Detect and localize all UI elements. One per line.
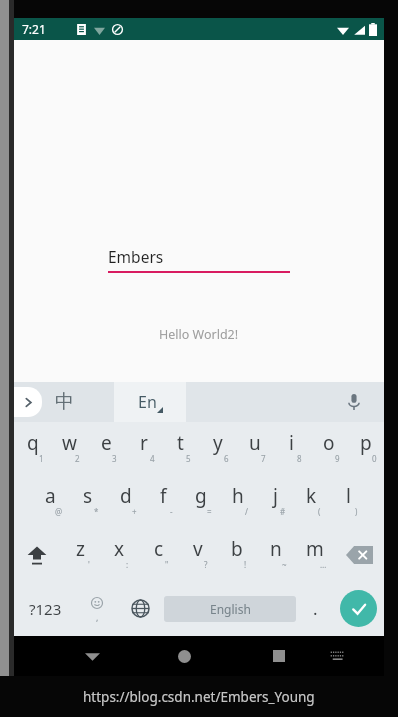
button[interactable]: i (273, 422, 310, 475)
staticText: a (45, 483, 56, 509)
staticText: 6 (224, 453, 229, 464)
button[interactable]: Emoji (76, 581, 118, 636)
staticText: v (193, 536, 203, 562)
button[interactable]: Switch keyboard (314, 636, 361, 676)
button[interactable]: Back (69, 636, 115, 676)
button[interactable]: p (347, 422, 384, 475)
staticText: x (114, 536, 125, 562)
button[interactable]: f (145, 475, 182, 528)
button[interactable]: e (88, 422, 125, 475)
staticText: o (323, 430, 335, 456)
staticText: c (154, 536, 164, 562)
staticText: Hello World2! (159, 326, 239, 343)
staticText: n (270, 536, 282, 562)
staticText: h (232, 483, 244, 509)
staticText: 7:21 (22, 21, 46, 37)
staticText: . (313, 597, 318, 620)
staticText: m (306, 536, 324, 562)
button[interactable]: s (69, 475, 107, 528)
button[interactable]: g (182, 475, 219, 528)
staticText: w (62, 430, 77, 456)
button[interactable]: m (295, 528, 334, 581)
button[interactable]: d (107, 475, 145, 528)
staticText: y (213, 430, 223, 456)
staticText: 5 (186, 453, 191, 464)
staticText: r (140, 430, 148, 456)
staticText: j (273, 483, 278, 509)
button[interactable]: English (164, 596, 296, 622)
staticText: ) (355, 506, 358, 517)
button[interactable]: Home (161, 636, 208, 676)
button[interactable]: Chinese input (14, 382, 114, 422)
staticText: 9 (335, 453, 340, 464)
staticText: u (249, 430, 261, 456)
button[interactable]: j (256, 475, 293, 528)
staticText: … (320, 559, 327, 570)
button[interactable]: ?123 (14, 581, 76, 636)
staticText: # (280, 506, 286, 517)
staticText: = (207, 506, 212, 517)
staticText: 中 (55, 390, 74, 414)
staticText: q (27, 430, 39, 456)
staticText: ?123 (29, 599, 62, 619)
staticText: z (76, 536, 85, 562)
button[interactable]: o (310, 422, 347, 475)
button[interactable]: Recents (255, 636, 302, 676)
staticText: 7 (261, 453, 266, 464)
staticText: g (195, 483, 207, 509)
staticText: 2 (75, 453, 80, 464)
staticText: @ (55, 506, 63, 517)
staticText: d (120, 483, 132, 509)
staticText: En (138, 391, 157, 413)
staticText: l (346, 483, 351, 509)
staticText: 4 (150, 453, 155, 464)
staticText: ? (204, 559, 208, 570)
staticText: ~ (282, 559, 287, 570)
button[interactable]: y (199, 422, 236, 475)
staticText: f (160, 483, 167, 509)
staticText: i (289, 430, 294, 456)
button[interactable]: En (114, 382, 186, 422)
button[interactable]: u (236, 422, 273, 475)
staticText: English (210, 601, 251, 617)
button[interactable]: c (139, 528, 178, 581)
staticText: * (94, 506, 99, 517)
button[interactable]: z (60, 528, 100, 581)
button[interactable]: Shift (14, 528, 60, 581)
button[interactable]: b (217, 528, 256, 581)
button[interactable]: n (256, 528, 295, 581)
staticText: ! (244, 559, 247, 570)
staticText: + (132, 506, 137, 517)
staticText: : (126, 559, 129, 570)
button[interactable]: q (14, 422, 51, 475)
staticText: ' (88, 559, 90, 570)
button[interactable]: l (330, 475, 367, 528)
button[interactable]: Enter (340, 590, 377, 627)
button[interactable]: Backspace (334, 528, 384, 581)
staticText: " (165, 559, 169, 570)
staticText: 8 (297, 453, 302, 464)
button[interactable]: w (51, 422, 88, 475)
button[interactable]: v (178, 528, 217, 581)
staticText: 3 (112, 453, 117, 464)
staticText: k (306, 483, 317, 509)
staticText: / (245, 506, 248, 517)
button[interactable]: Voice input (186, 382, 384, 422)
button[interactable]: Change language (118, 581, 162, 636)
button[interactable]: k (293, 475, 330, 528)
staticText: 0 (372, 453, 377, 464)
staticText: p (360, 430, 372, 456)
button[interactable]: a (31, 475, 69, 528)
button[interactable]: Expand toolbar (14, 387, 42, 417)
button[interactable]: . (298, 581, 332, 636)
staticText: b (231, 536, 243, 562)
staticText: s (83, 483, 93, 509)
button[interactable]: t (162, 422, 199, 475)
staticText: e (101, 430, 112, 456)
staticText: 1 (39, 453, 44, 464)
button[interactable]: h (219, 475, 256, 528)
button[interactable]: r (125, 422, 162, 475)
staticText: https://blog.csdn.net/Embers_Young (83, 688, 315, 706)
staticText: - (170, 506, 173, 517)
button[interactable]: x (100, 528, 139, 581)
